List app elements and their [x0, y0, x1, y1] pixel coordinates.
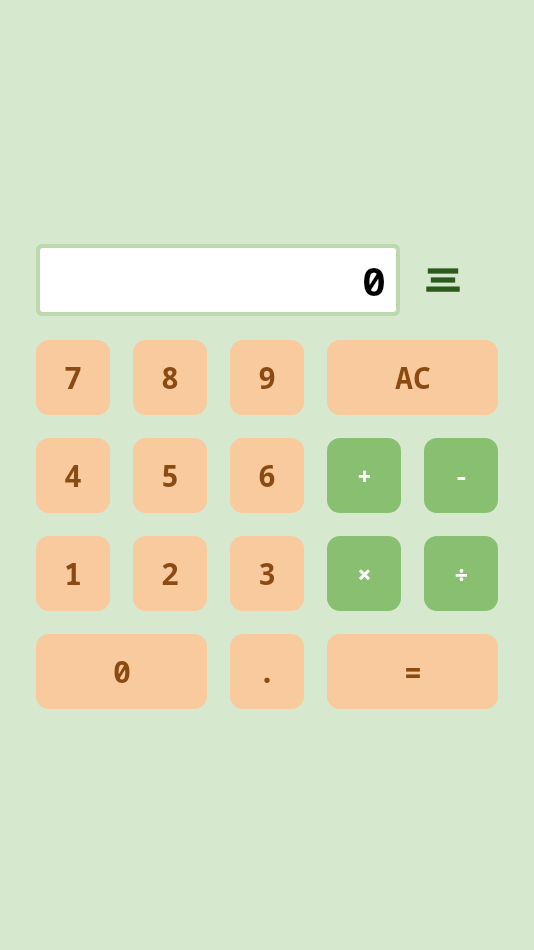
button[interactable]: 1	[36, 536, 110, 611]
staticText: ÷	[454, 557, 469, 590]
button[interactable]: 6	[230, 438, 304, 513]
staticText: -	[454, 459, 469, 492]
staticText: 2	[161, 553, 179, 594]
button[interactable]: 5	[133, 438, 207, 513]
staticText: ×	[357, 557, 372, 590]
button[interactable]: +	[327, 438, 401, 513]
button[interactable]: -	[424, 438, 498, 513]
button[interactable]: 2	[133, 536, 207, 611]
button[interactable]: AC	[327, 340, 498, 415]
staticText: 1	[64, 553, 82, 594]
staticText: 5	[161, 455, 179, 496]
button[interactable]: .	[230, 634, 304, 709]
button[interactable]: 0	[36, 634, 207, 709]
staticText: 9	[258, 357, 276, 398]
button[interactable]: 9	[230, 340, 304, 415]
button[interactable]: 4	[36, 438, 110, 513]
button[interactable]: ÷	[424, 536, 498, 611]
staticText: 7	[64, 357, 82, 398]
staticText: 4	[64, 455, 82, 496]
staticText: .	[258, 651, 276, 692]
staticText: +	[357, 459, 372, 492]
staticText: 6	[258, 455, 276, 496]
staticText: 0	[362, 253, 386, 307]
staticText: =	[404, 651, 422, 692]
staticText: 0	[113, 651, 131, 692]
staticText: AC	[395, 357, 431, 398]
button[interactable]: 8	[133, 340, 207, 415]
button[interactable]: 7	[36, 340, 110, 415]
button[interactable]: 0	[40, 248, 396, 312]
button[interactable]: ×	[327, 536, 401, 611]
staticText: 8	[161, 357, 179, 398]
button[interactable]: =	[327, 634, 498, 709]
staticText: 3	[258, 553, 276, 594]
button[interactable]: 3	[230, 536, 304, 611]
button[interactable]: Menu	[416, 253, 470, 307]
